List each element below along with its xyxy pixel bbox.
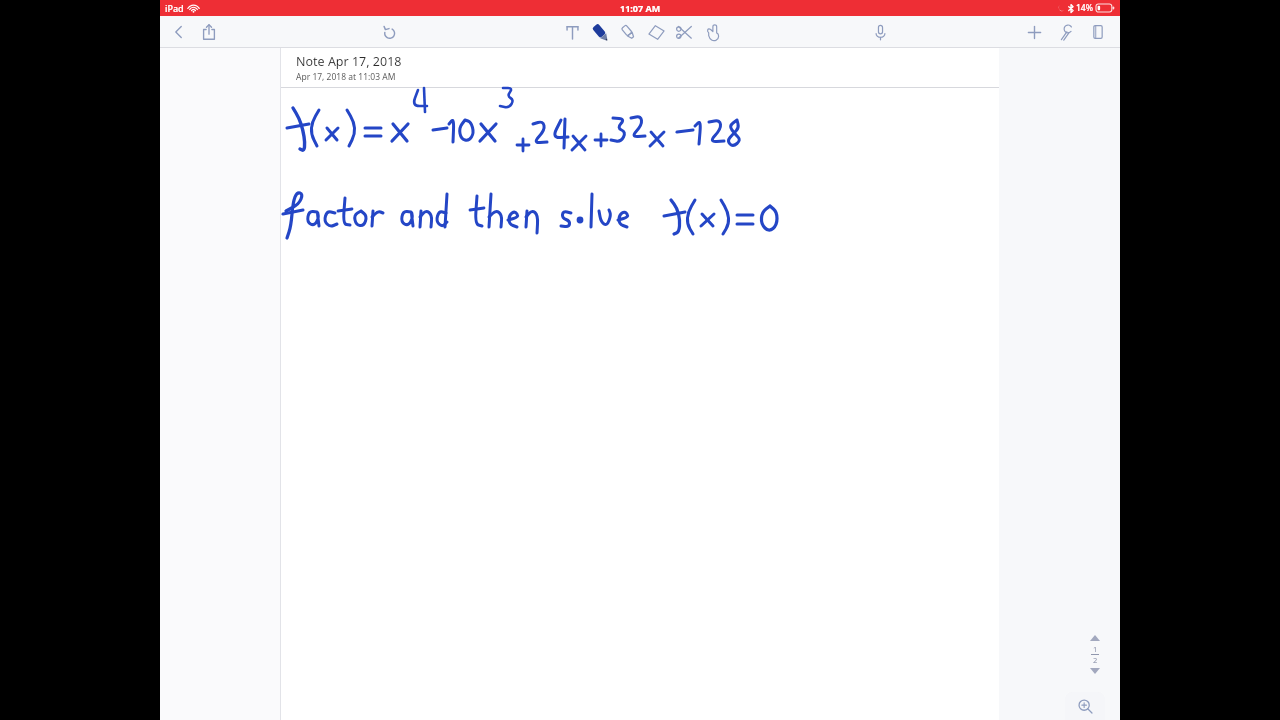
button[interactable]: Pages xyxy=(1084,18,1112,46)
button[interactable]: Share xyxy=(195,18,223,46)
button[interactable]: Text tool xyxy=(558,18,586,46)
button[interactable]: Hand tool xyxy=(698,18,726,46)
button[interactable]: Settings xyxy=(1052,18,1080,46)
staticText: Note Apr 17, 2018 xyxy=(296,53,402,70)
staticText: 1 xyxy=(1093,644,1098,654)
button[interactable]: Page 1 of 2 xyxy=(1090,635,1100,674)
staticText: iPad xyxy=(165,2,184,14)
button[interactable]: Undo xyxy=(375,18,403,46)
button[interactable]: Add xyxy=(1020,18,1048,46)
button[interactable]: Highlighter xyxy=(614,18,642,46)
button[interactable]: Zoom xyxy=(1065,692,1105,720)
staticText: 14% xyxy=(1076,2,1093,14)
staticText: 2 xyxy=(1093,655,1098,665)
button[interactable]: Pen xyxy=(586,18,614,46)
button[interactable]: Back xyxy=(165,18,193,46)
staticText: 11:07 AM xyxy=(620,2,661,14)
button[interactable]: Record audio xyxy=(866,18,894,46)
button[interactable]: Eraser xyxy=(642,18,670,46)
staticText: Apr 17, 2018 at 11:03 AM xyxy=(296,71,396,83)
button[interactable]: Cut xyxy=(670,18,698,46)
